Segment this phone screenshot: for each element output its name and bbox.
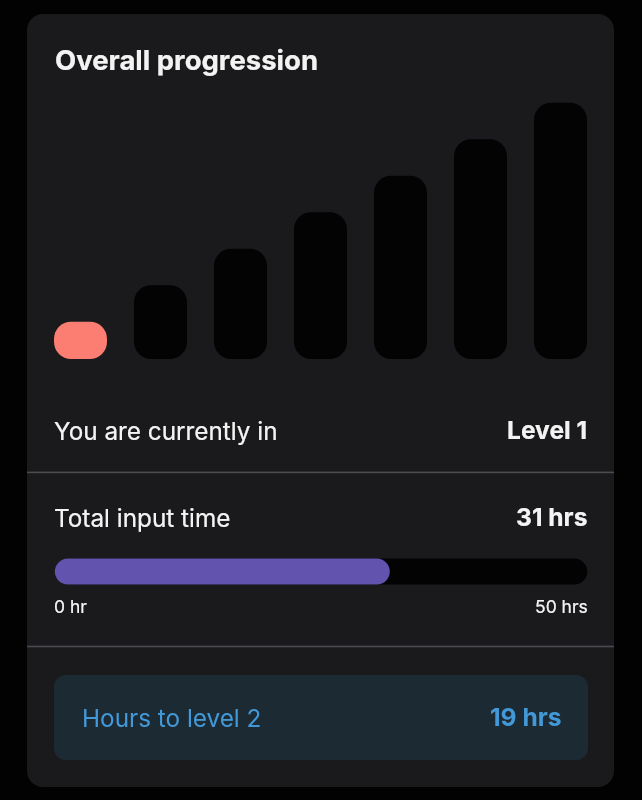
staticText: 0 hr: [54, 596, 87, 617]
other: Level progression chart: [54, 102, 587, 359]
staticText: 50 hrs: [535, 596, 588, 617]
staticText: Hours to level 2: [82, 703, 262, 732]
staticText: 19 hrs: [490, 702, 562, 732]
staticText: Overall progression: [55, 43, 319, 76]
staticText: Level 1: [507, 415, 588, 445]
button[interactable]: Hours to level 2: [54, 675, 588, 760]
staticText: 31 hrs: [516, 502, 588, 532]
staticText: Total input time: [54, 503, 231, 532]
staticText: You are currently in: [54, 416, 278, 445]
